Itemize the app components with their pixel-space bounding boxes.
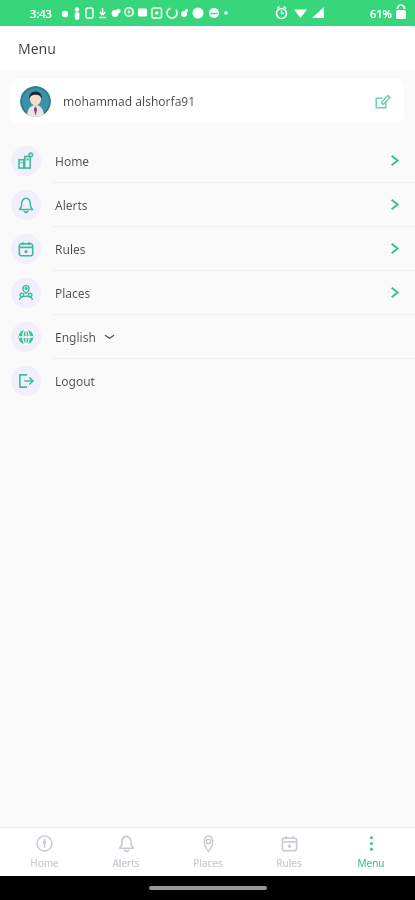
staticText: Home <box>55 153 90 169</box>
button[interactable]: English <box>0 315 415 358</box>
button[interactable]: Alerts <box>0 183 415 226</box>
button[interactable]: Menu <box>333 828 409 876</box>
staticText: Rules <box>276 856 302 870</box>
staticText: Rules <box>55 241 86 257</box>
button[interactable]: Logout <box>0 359 415 402</box>
staticText: Places <box>55 285 91 301</box>
button[interactable]: Home <box>0 139 415 182</box>
button[interactable]: Rules <box>0 227 415 270</box>
staticText: mohammad alshorfa91 <box>63 93 196 109</box>
staticText: Alerts <box>112 856 140 870</box>
button[interactable]: Rules <box>251 828 327 876</box>
staticText: 61% <box>370 6 392 21</box>
button[interactable]: Home <box>6 828 82 876</box>
button[interactable]: Places <box>0 271 415 314</box>
staticText: 3:43 <box>30 6 52 21</box>
staticText: Home <box>30 856 59 870</box>
button[interactable]: Edit profile <box>369 88 395 114</box>
staticText: Menu <box>18 39 56 58</box>
staticText: Menu <box>357 856 385 870</box>
staticText: English <box>55 329 96 345</box>
button[interactable]: Alerts <box>88 828 164 876</box>
staticText: Logout <box>55 373 95 389</box>
staticText: Places <box>193 856 223 870</box>
button[interactable]: Places <box>170 828 246 876</box>
button[interactable]: mohammad alshorfa91 <box>11 79 404 123</box>
staticText: Alerts <box>55 197 88 213</box>
